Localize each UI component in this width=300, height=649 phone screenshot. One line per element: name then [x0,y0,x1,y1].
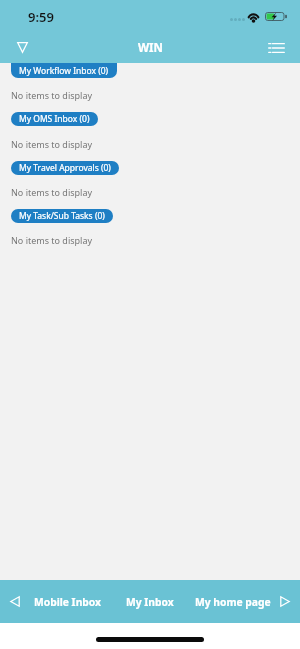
button[interactable]: My Task/Sub Tasks (0) [11,209,113,223]
staticText: Mobile Inbox [34,595,102,609]
button[interactable]: My OMS Inbox (0) [11,112,98,126]
staticText: My Travel Approvals (0) [19,162,111,174]
button[interactable]: My Travel Approvals (0) [11,161,119,175]
staticText: No items to display [11,234,93,246]
staticText: WIN [138,40,163,56]
button[interactable]: My Inbox [126,580,174,623]
staticText: No items to display [11,138,93,150]
button[interactable]: Mobile Inbox [0,580,112,623]
staticText: My home page [195,595,271,609]
staticText: No items to display [11,186,93,198]
button[interactable]: My home page [195,580,300,623]
staticText: My Inbox [126,595,174,609]
button[interactable]: Filter [10,35,34,59]
staticText: My Task/Sub Tasks (0) [19,210,105,222]
button[interactable]: List options [263,35,289,61]
button[interactable]: My Workflow Inbox (0) [11,63,117,78]
staticText: No items to display [11,89,93,101]
staticText: 9:59 [28,8,54,26]
staticText: My Workflow Inbox (0) [19,65,109,77]
staticText: My OMS Inbox (0) [19,113,90,125]
